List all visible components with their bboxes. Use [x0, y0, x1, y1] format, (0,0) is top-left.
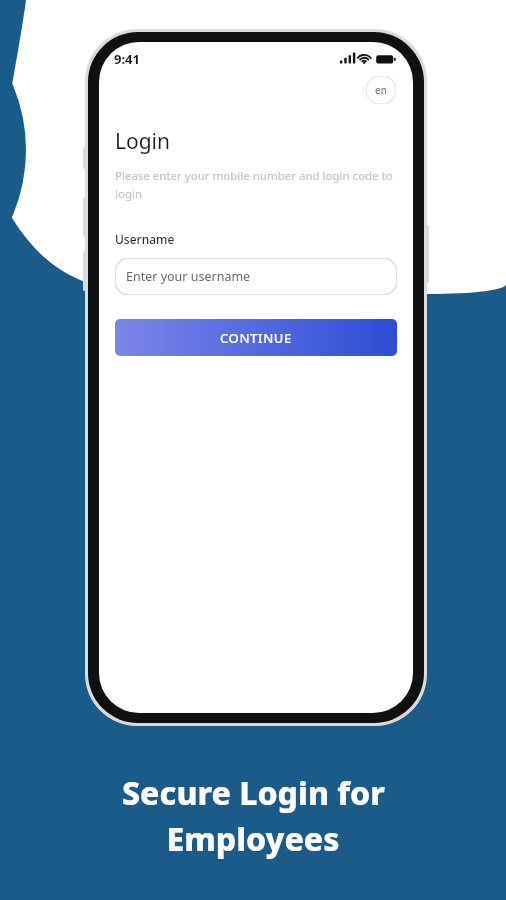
staticText: Username: [115, 231, 175, 247]
staticText: Login: [115, 127, 171, 156]
staticText: 9:41: [114, 50, 140, 68]
staticText: en: [375, 83, 387, 97]
staticText: Secure Login for: [122, 771, 385, 815]
button[interactable]: Enter your username: [115, 258, 397, 295]
button[interactable]: CONTINUE: [115, 319, 397, 356]
staticText: Employees: [166, 817, 340, 861]
button[interactable]: Change language, English: [366, 76, 396, 104]
staticText: Enter your username: [126, 268, 251, 285]
staticText: Please enter your mobile number and logi…: [115, 168, 397, 201]
staticText: CONTINUE: [220, 329, 292, 347]
